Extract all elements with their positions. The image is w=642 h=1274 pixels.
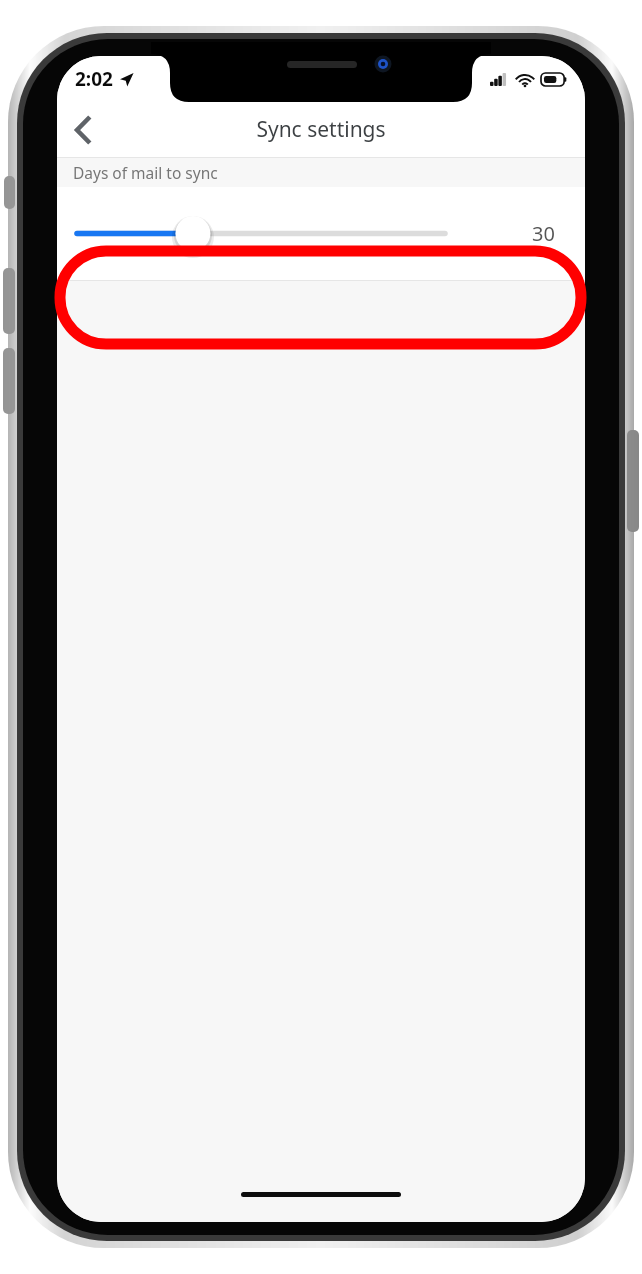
staticText: 2:02 <box>75 66 113 92</box>
staticText: Sync settings <box>256 115 386 144</box>
staticText: Days of mail to sync <box>73 162 218 183</box>
button[interactable]: Back <box>60 107 106 153</box>
staticText: 30 <box>532 220 555 247</box>
button[interactable]: 30 <box>57 187 585 280</box>
